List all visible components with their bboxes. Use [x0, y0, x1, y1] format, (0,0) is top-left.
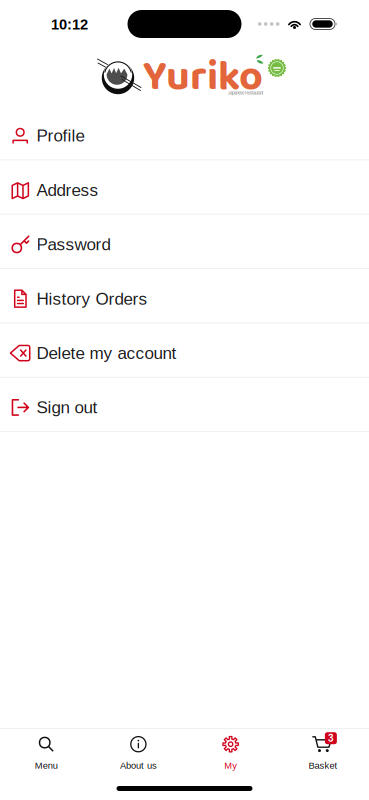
button[interactable]: Profile — [0, 106, 369, 160]
staticText: Profile — [37, 126, 85, 145]
button[interactable]: Menu — [0, 729, 92, 772]
button[interactable]: Address — [0, 160, 369, 215]
staticText: Basket — [308, 760, 337, 771]
button[interactable]: History Orders — [0, 269, 369, 323]
staticText: About us — [120, 760, 157, 771]
staticText: Japanese Restaurant — [228, 90, 263, 95]
staticText: Password — [37, 235, 111, 254]
staticText: My — [224, 760, 237, 771]
button[interactable]: About us — [92, 729, 184, 772]
button[interactable]: 3 — [277, 729, 369, 772]
staticText: Address — [37, 180, 99, 200]
button[interactable]: My — [184, 729, 277, 772]
button[interactable]: Sign out — [0, 378, 369, 432]
staticText: Yuriko — [143, 44, 263, 111]
staticText: Delete my account — [37, 343, 177, 363]
button[interactable]: Delete my account — [0, 323, 369, 378]
staticText: History Orders — [37, 289, 148, 308]
staticText: 10:12 — [51, 16, 88, 33]
staticText: Sign out — [37, 398, 98, 417]
staticText: Menu — [35, 760, 58, 771]
button[interactable]: Password — [0, 215, 369, 269]
staticText: 3 — [328, 733, 334, 744]
